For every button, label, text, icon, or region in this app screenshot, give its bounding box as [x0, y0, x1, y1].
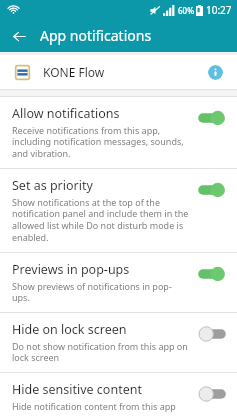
staticText: Hide sensitive content	[12, 381, 142, 398]
staticText: Do not show notification from this app o…	[12, 340, 189, 364]
staticText: Set as priority	[12, 177, 93, 194]
staticText: KONE Flow	[43, 64, 208, 80]
button[interactable]: Set as priority	[0, 169, 237, 252]
button[interactable]: Hide sensitive content off	[197, 385, 227, 403]
staticText: Hide on lock screen	[12, 321, 127, 338]
button[interactable]: Allow notifications on	[197, 109, 227, 127]
button[interactable]: Previews in pop-ups	[0, 253, 237, 312]
staticText: 60%	[178, 5, 194, 16]
button[interactable]: Hide on lock screen off	[197, 325, 227, 343]
staticText: Receive notifications from this app, inc…	[12, 124, 189, 160]
button[interactable]: Back	[8, 25, 30, 47]
staticText: 10:27	[206, 3, 232, 17]
staticText: App notifications	[40, 26, 152, 45]
button[interactable]: Hide sensitive content	[0, 373, 237, 420]
button[interactable]: Hide on lock screen	[0, 313, 237, 372]
staticText: Previews in pop-ups	[12, 261, 130, 278]
staticText: Hide notification content from this app …	[12, 400, 189, 412]
button[interactable]: Set as priority on	[197, 181, 227, 199]
staticText: Allow notifications	[12, 105, 120, 122]
button[interactable]: KONE Flow	[0, 55, 237, 89]
button[interactable]: Allow notifications	[0, 97, 237, 168]
button[interactable]: App info	[208, 65, 223, 80]
staticText: Show previews of notifications in pop-up…	[12, 280, 189, 304]
button[interactable]: Previews in pop-ups on	[197, 265, 227, 283]
staticText: Show notifications at the top of the not…	[12, 196, 189, 244]
